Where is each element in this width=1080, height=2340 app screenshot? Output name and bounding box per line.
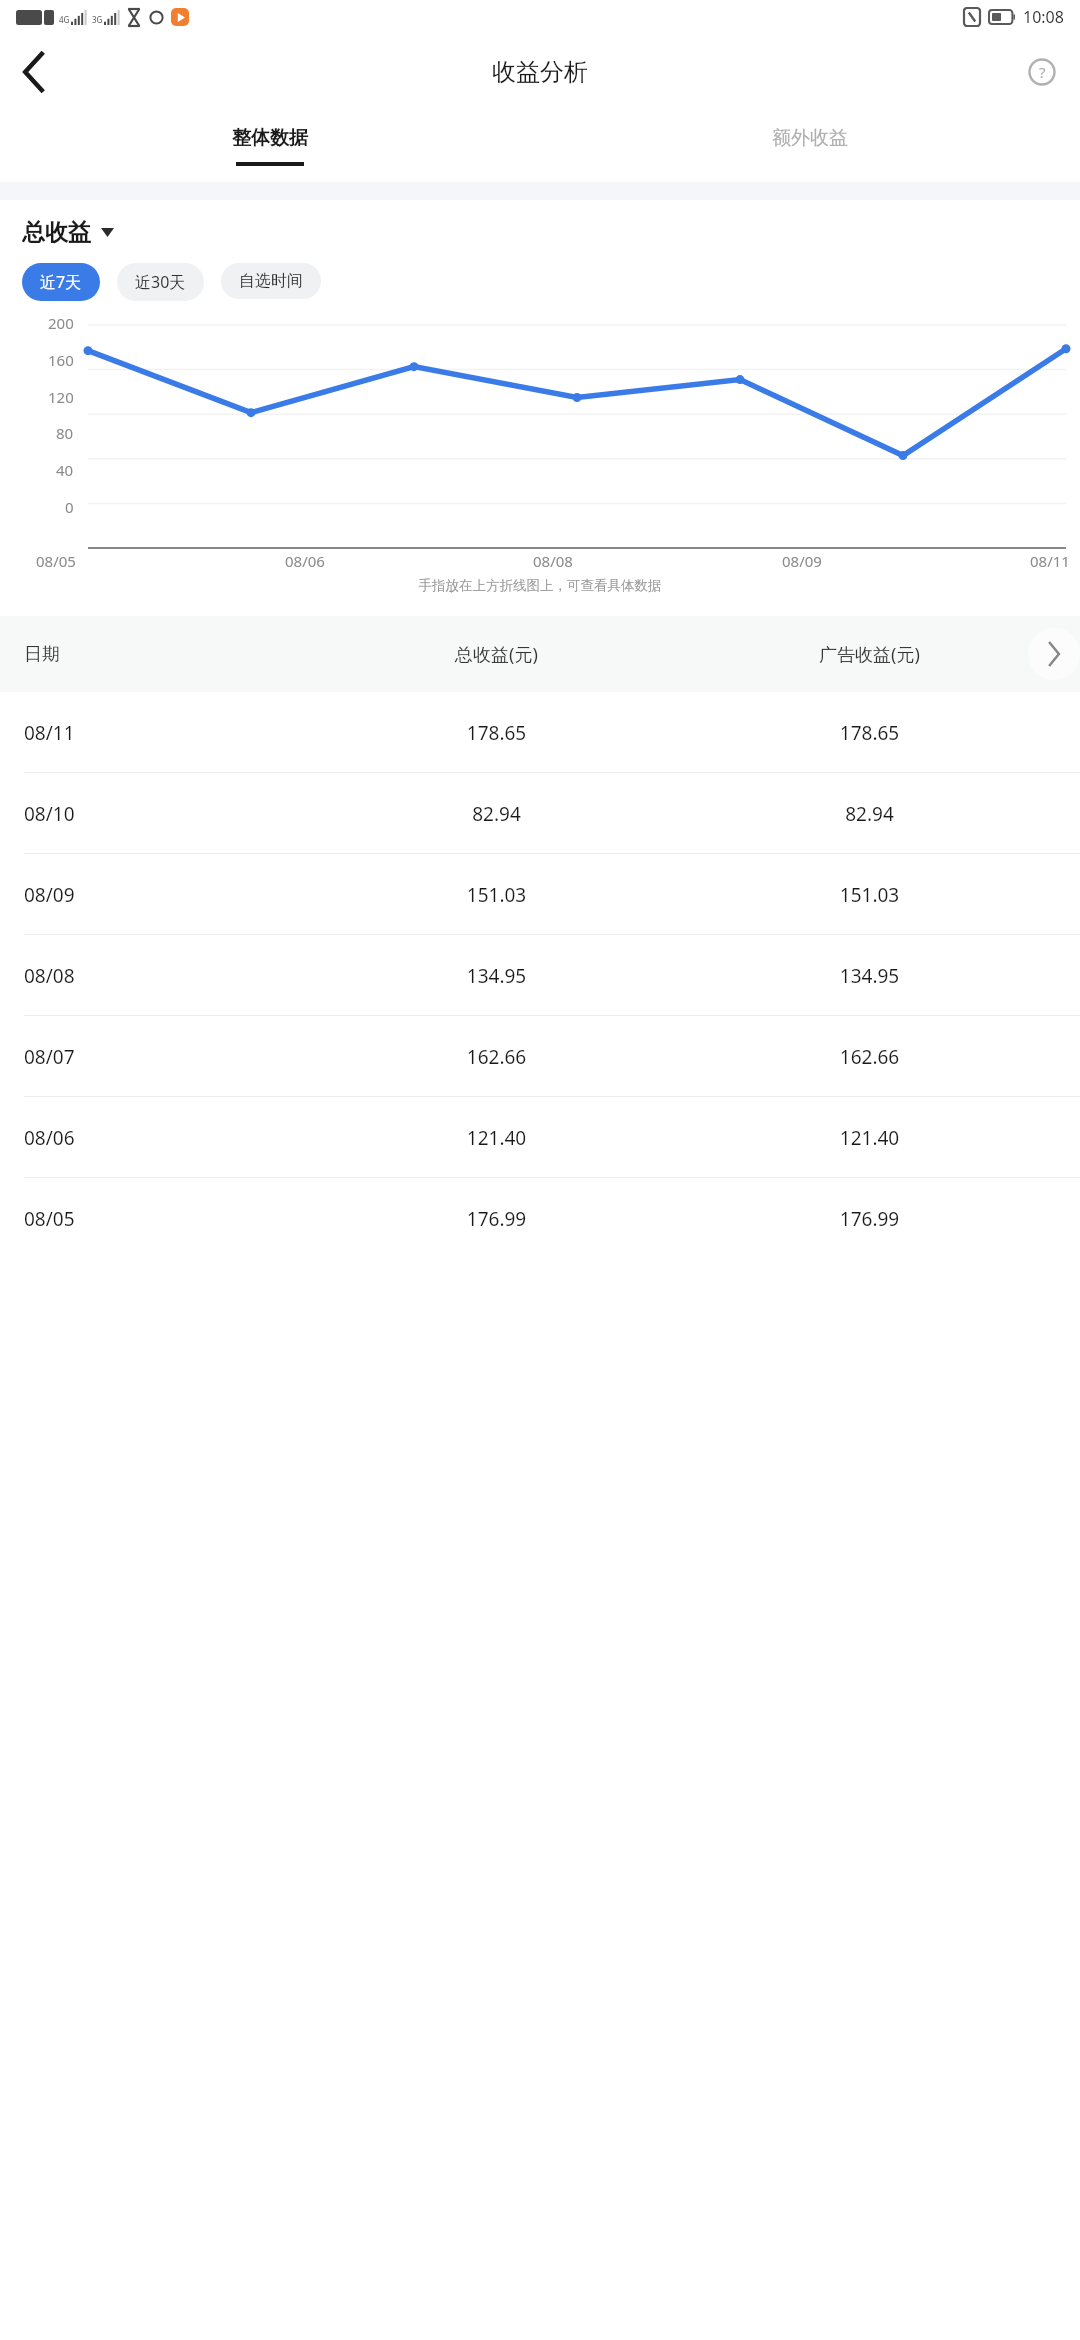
button[interactable]: 额外收益 [540,110,1080,182]
staticText: 08/08 [533,551,573,571]
button[interactable]: More columns [1028,628,1080,680]
button[interactable]: 自选时间 [221,263,321,299]
staticText: 121.40 [683,1125,1056,1151]
staticText: 120 [48,387,74,407]
staticText: 08/07 [24,1044,310,1070]
staticText: 整体数据 [232,126,308,150]
staticText: 176.99 [683,1206,1056,1232]
staticText: 自选时间 [239,271,303,291]
staticText: 10:08 [1023,6,1064,28]
staticText: 4G [59,14,70,25]
staticText: 08/06 [24,1125,310,1151]
staticText: 08/11 [24,720,310,746]
staticText: 82.94 [683,801,1056,827]
button[interactable]: 总收益 [22,218,1080,247]
staticText: 151.03 [683,882,1056,908]
staticText: 134.95 [683,963,1056,989]
staticText: 40 [56,460,74,480]
staticText: 82.94 [310,801,683,827]
button[interactable]: 08/08 [0,935,1080,1016]
staticText: 08/05 [36,551,76,571]
staticText: 121.40 [310,1125,683,1151]
button[interactable]: Help [1018,48,1066,96]
staticText: 近30天 [135,271,186,293]
staticText: 162.66 [310,1044,683,1070]
staticText: 总收益(元) [310,642,683,667]
staticText: 176.99 [310,1206,683,1232]
button[interactable]: 08/07 [0,1016,1080,1097]
staticText: ? [1039,62,1046,82]
staticText: 178.65 [310,720,683,746]
staticText: 08/06 [285,551,325,571]
button[interactable]: 08/05 [0,1178,1080,1259]
staticText: 08/09 [24,882,310,908]
staticText: 160 [48,350,74,370]
staticText: 80 [56,423,74,443]
staticText: 200 [48,313,74,333]
staticText: 收益分析 [492,57,588,87]
staticText: 总收益 [22,218,91,247]
staticText: 0 [65,497,74,517]
staticText: 3G [92,14,103,25]
staticText: 日期 [24,643,310,666]
staticText: 162.66 [683,1044,1056,1070]
staticText: 178.65 [683,720,1056,746]
staticText: 151.03 [310,882,683,908]
button[interactable]: 08/06 [0,1097,1080,1178]
staticText: 08/10 [24,801,310,827]
staticText: 08/11 [1030,551,1070,571]
button[interactable]: 近7天 [22,263,100,301]
staticText: 134.95 [310,963,683,989]
button[interactable]: 08/09 [0,854,1080,935]
button[interactable]: 整体数据 [0,110,540,182]
button[interactable]: Back [6,44,62,100]
button[interactable]: 08/11 [0,692,1080,773]
staticText: 08/08 [24,963,310,989]
staticText: 额外收益 [772,126,848,150]
staticText: 近7天 [40,271,82,293]
staticText: 08/09 [782,551,822,571]
staticText: 广告收益(元) [683,642,1056,667]
button[interactable]: 08/10 [0,773,1080,854]
staticText: 08/05 [24,1206,310,1232]
staticText: 手指放在上方折线图上，可查看具体数据 [0,577,1080,594]
button[interactable]: 近30天 [117,263,204,301]
